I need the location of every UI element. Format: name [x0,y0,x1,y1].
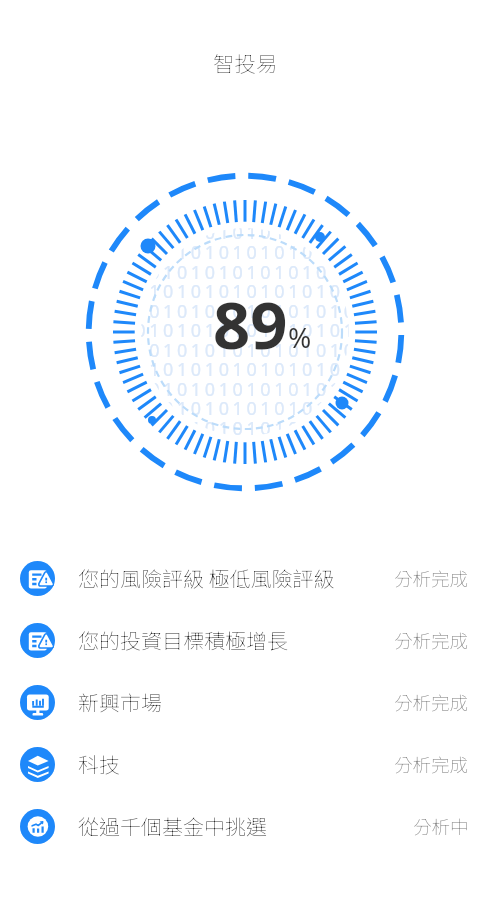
staticText: 89 [213,280,288,369]
staticText: 新興市場 [78,687,162,717]
staticText: 您的投資目標積極增長 [78,625,288,655]
button[interactable]: 新興市場 [0,671,490,733]
staticText: 分析中 [413,813,469,840]
staticText: 分析完成 [394,627,469,654]
button[interactable]: 從過千個基金中挑選 [0,795,490,857]
button[interactable]: 科技 [0,733,490,795]
staticText: 從過千個基金中挑選 [78,811,267,841]
staticText: 分析完成 [394,565,469,592]
staticText: 智投易 [213,47,278,78]
button[interactable]: 您的投資目標積極增長 [0,609,490,671]
staticText: % [288,318,312,356]
staticText: 分析完成 [394,689,469,716]
staticText: 分析完成 [394,751,469,778]
staticText: 您的風險評級 極低風險評級 [78,563,335,593]
staticText: 科技 [78,749,120,779]
button[interactable]: 您的風險評級 極低風險評級 [0,547,490,609]
